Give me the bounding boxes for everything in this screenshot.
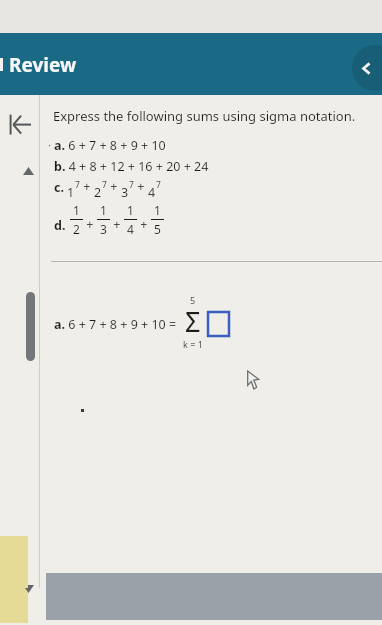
staticText: 3	[121, 184, 129, 201]
staticText: c.	[54, 179, 64, 196]
staticText: 4	[127, 221, 134, 237]
staticText: 1	[154, 202, 161, 218]
staticText: ·	[48, 137, 51, 152]
staticText: a. 6 + 7 + 8 + 9 + 10 =	[54, 316, 177, 333]
staticText: +	[80, 178, 94, 195]
staticText: 7	[156, 179, 161, 191]
staticText: k = 1	[183, 338, 203, 350]
button[interactable]: Scroll down	[20, 581, 37, 596]
staticText: 1	[127, 202, 134, 218]
button[interactable]: Scroll up	[20, 163, 37, 178]
staticText: 3	[100, 221, 107, 237]
staticText: +	[107, 178, 121, 195]
button[interactable]	[26, 292, 35, 361]
staticText: 7	[129, 179, 134, 191]
button[interactable]: Go to first page	[5, 109, 36, 139]
staticText: Σ	[185, 303, 201, 340]
staticText: Express the following sums using sigma n…	[53, 107, 356, 125]
staticText: 1	[67, 184, 75, 201]
staticText: b. 4 + 8 + 12 + 16 + 20 + 24	[54, 158, 209, 175]
staticText: +	[137, 216, 151, 233]
staticText: 2	[73, 221, 80, 237]
staticText: 1	[73, 202, 80, 218]
staticText: d.	[54, 217, 66, 234]
staticText: 5	[190, 294, 196, 306]
staticText: 4	[148, 184, 156, 201]
staticText: 2	[94, 184, 102, 201]
staticText: 7	[102, 179, 107, 191]
staticText: +	[110, 216, 124, 233]
staticText: +	[83, 216, 97, 233]
staticText: 1	[100, 202, 107, 218]
staticText: Review	[9, 52, 77, 78]
staticText: 5	[154, 221, 161, 237]
staticText: 7	[75, 179, 80, 191]
staticText: a. 6 + 7 + 8 + 9 + 10	[54, 137, 166, 154]
button[interactable]: Answer field	[208, 312, 229, 336]
staticText: +	[134, 178, 148, 195]
button[interactable]: Previous	[352, 45, 382, 91]
